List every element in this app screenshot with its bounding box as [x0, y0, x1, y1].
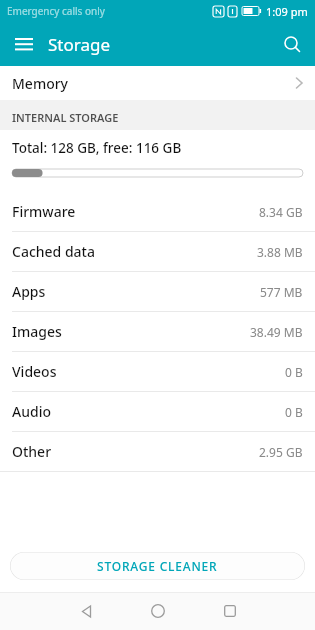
staticText: 2.95 GB	[259, 444, 303, 460]
staticText: 0 B	[285, 404, 303, 420]
staticText: INTERNAL STORAGE	[12, 110, 119, 125]
button[interactable]: Audio	[0, 392, 315, 431]
staticText: 38.49 MB	[250, 324, 303, 340]
button[interactable]	[0, 22, 48, 66]
staticText: 3.88 MB	[257, 244, 303, 260]
staticText: Emergency calls only	[7, 4, 105, 18]
button[interactable]: Firmware	[0, 192, 315, 231]
staticText: Memory	[12, 74, 69, 93]
staticText: STORAGE CLEANER	[97, 558, 218, 574]
staticText: Total: 128 GB, free: 116 GB	[12, 139, 182, 157]
staticText: Images	[12, 322, 62, 341]
staticText: Other	[12, 442, 52, 461]
staticText: 1:09 pm	[266, 4, 308, 19]
button[interactable]	[206, 592, 254, 630]
staticText: Videos	[12, 362, 57, 381]
button[interactable]: Videos	[0, 352, 315, 391]
staticText: Firmware	[12, 202, 76, 221]
button[interactable]: Cached data	[0, 232, 315, 271]
button[interactable]: Images	[0, 312, 315, 351]
staticText: Storage	[48, 33, 111, 56]
staticText: 577 MB	[260, 284, 303, 300]
staticText: 8.34 GB	[259, 204, 303, 220]
button[interactable]: Other	[0, 432, 315, 471]
staticText: Audio	[12, 402, 51, 421]
staticText: Apps	[12, 282, 46, 301]
staticText: Cached data	[12, 242, 95, 261]
button[interactable]	[269, 22, 315, 66]
staticText: 0 B	[285, 364, 303, 380]
button[interactable]	[62, 592, 110, 630]
button[interactable]: STORAGE CLEANER	[10, 552, 305, 580]
button[interactable]: Memory	[0, 66, 315, 100]
button[interactable]: Apps	[0, 272, 315, 311]
button[interactable]	[134, 592, 182, 630]
